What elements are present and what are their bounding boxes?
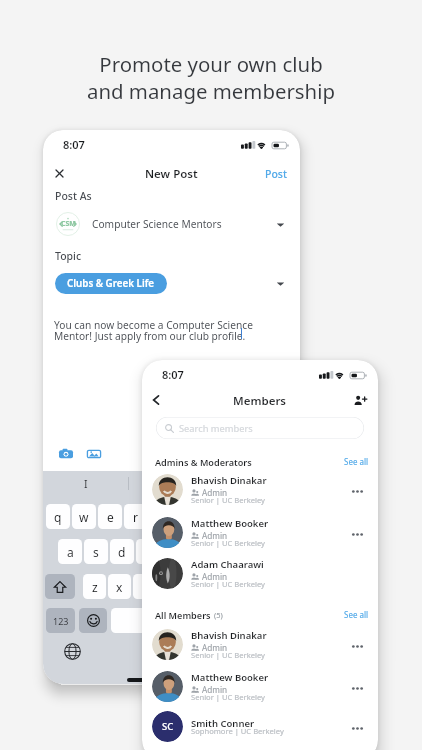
button[interactable]: Matthew Booker: [142, 517, 378, 555]
button[interactable]: x: [108, 574, 131, 599]
button[interactable]: See all: [344, 609, 369, 620]
button[interactable]: More options: [349, 483, 365, 499]
staticText: SC: [162, 720, 174, 733]
button[interactable]: r: [124, 504, 147, 529]
staticText: v: [167, 579, 174, 595]
button[interactable]: I: [43, 471, 128, 496]
staticText: m: [242, 579, 254, 595]
button[interactable]: Add member: [350, 390, 370, 410]
button[interactable]: CSM: [43, 212, 300, 236]
button[interactable]: Emoji: [79, 608, 107, 633]
button[interactable]: More options: [349, 680, 365, 696]
button[interactable]: f: [136, 539, 160, 564]
button[interactable]: return: [249, 608, 297, 633]
button[interactable]: v: [158, 574, 182, 599]
button[interactable]: Photo library: [87, 447, 101, 461]
staticText: 8:07: [63, 137, 85, 152]
staticText: e: [107, 509, 114, 525]
button[interactable]: Clubs & Greek Life: [55, 273, 167, 294]
button[interactable]: n: [210, 574, 234, 599]
staticText: Senior | UC Berkeley: [191, 650, 265, 660]
button[interactable]: More options: [349, 720, 365, 736]
button[interactable]: w: [72, 504, 96, 529]
button[interactable]: Close: [49, 163, 69, 183]
button[interactable]: SC: [142, 711, 378, 749]
staticText: I: [84, 477, 88, 491]
staticText: g: [170, 544, 178, 560]
button[interactable]: t: [149, 504, 172, 529]
staticText: d: [118, 544, 126, 560]
button[interactable]: b: [184, 574, 208, 599]
staticText: Admin: [202, 684, 228, 695]
staticText: New Post: [145, 166, 198, 182]
button[interactable]: Shift: [45, 574, 75, 599]
staticText: 8:07: [162, 367, 184, 382]
button[interactable]: Back: [146, 390, 166, 410]
button[interactable]: j: [212, 539, 235, 564]
staticText: u: [207, 509, 215, 525]
button[interactable]: i: [224, 504, 247, 529]
button[interactable]: Bhavish Dinakar: [142, 629, 378, 667]
button[interactable]: More options: [349, 526, 365, 542]
staticText: Clubs & Greek Life: [67, 277, 155, 290]
staticText: Members: [233, 393, 287, 409]
staticText: Search members: [179, 422, 253, 435]
button[interactable]: space: [111, 608, 245, 633]
button[interactable]: Matthew Booker: [142, 671, 378, 709]
staticText: k: [245, 544, 252, 560]
button[interactable]: Bhavish Dinakar: [142, 474, 378, 512]
staticText: h: [195, 544, 203, 560]
button[interactable]: a: [58, 539, 82, 564]
staticText: s: [93, 544, 99, 560]
button[interactable]: Switch keyboard: [64, 643, 81, 660]
staticText: t: [158, 509, 163, 525]
staticText: j: [222, 544, 226, 560]
button[interactable]: d: [110, 539, 134, 564]
staticText: q: [54, 509, 62, 525]
button[interactable]: Camera: [59, 447, 73, 461]
staticText: Adam Chaarawi: [191, 558, 264, 571]
button[interactable]: z: [83, 574, 106, 599]
staticText: CSM: [61, 219, 76, 229]
staticText: Topic: [55, 249, 82, 263]
button[interactable]: h: [187, 539, 210, 564]
staticText: Computer Science Mentors: [92, 217, 222, 231]
button[interactable]: l: [262, 539, 285, 564]
button[interactable]: s: [84, 539, 108, 564]
staticText: Sophomore | UC Berkeley: [191, 726, 284, 736]
staticText: 123: [53, 615, 69, 627]
staticText: Matthew Booker: [191, 517, 269, 530]
button[interactable]: [215, 471, 300, 496]
button[interactable]: Search members: [156, 417, 364, 439]
button[interactable]: u: [199, 504, 222, 529]
button[interactable]: Adam Chaarawi: [142, 558, 378, 596]
staticText: Promote your own club and manage members…: [0, 50, 422, 105]
staticText: Senior | UC Berkeley: [191, 538, 265, 548]
button[interactable]: [129, 471, 214, 496]
staticText: Admin: [202, 571, 228, 582]
button[interactable]: m: [236, 574, 260, 599]
button[interactable]: Numbers: [46, 608, 75, 633]
button[interactable]: o: [249, 504, 272, 529]
button[interactable]: c: [133, 574, 156, 599]
button[interactable]: k: [237, 539, 260, 564]
staticText: Smith Conner: [191, 717, 255, 730]
staticText: See all: [344, 609, 369, 620]
button[interactable]: g: [162, 539, 185, 564]
button[interactable]: y: [174, 504, 197, 529]
button[interactable]: e: [98, 504, 122, 529]
staticText: a: [67, 544, 74, 560]
button[interactable]: More options: [349, 638, 365, 654]
staticText: Admin: [202, 487, 228, 498]
button[interactable]: See all: [344, 456, 369, 467]
button[interactable]: q: [46, 504, 70, 529]
button[interactable]: Post: [260, 163, 292, 184]
